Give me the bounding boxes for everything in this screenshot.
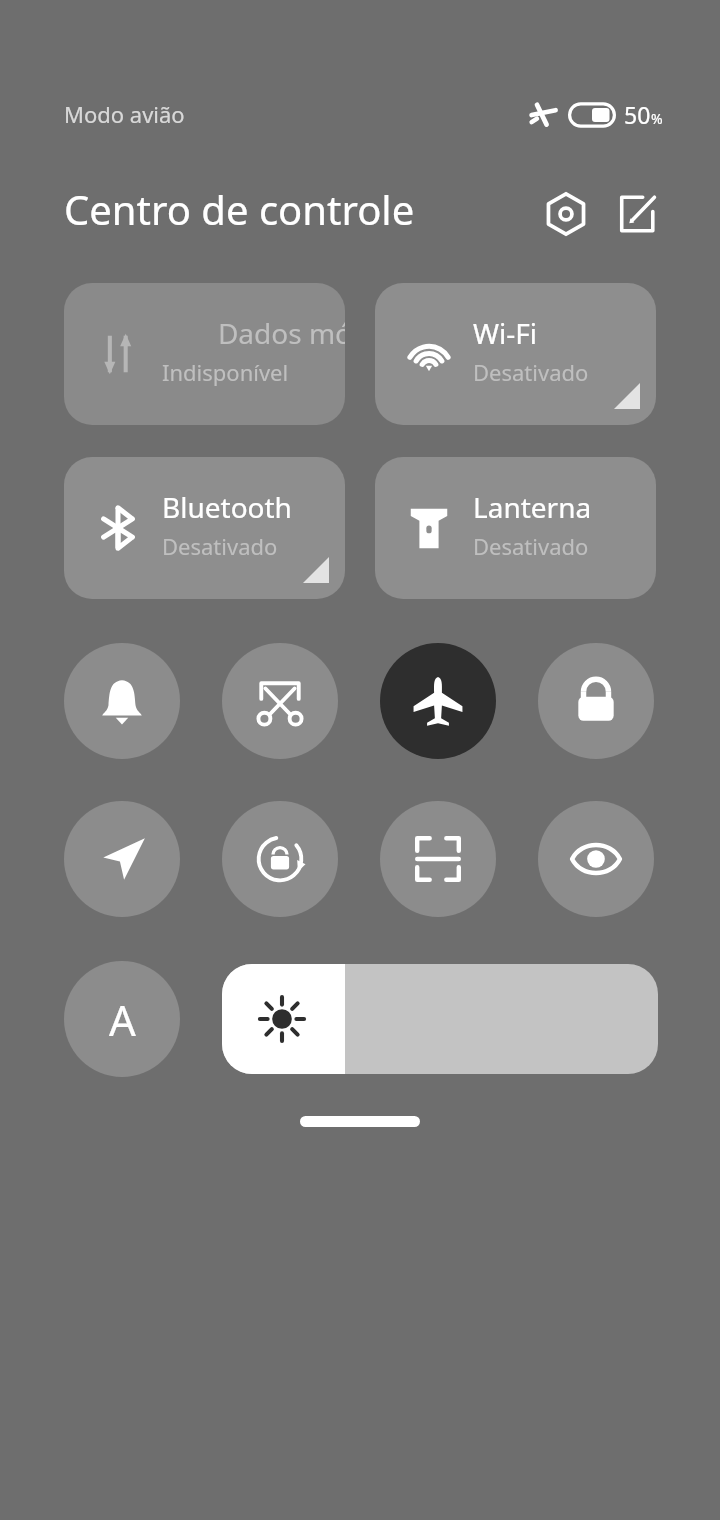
button[interactable]: Escanear: [380, 801, 496, 917]
staticText: Desativado: [473, 357, 589, 387]
button[interactable]: Leitura: [538, 801, 654, 917]
staticText: Indisponível: [162, 357, 289, 387]
button[interactable]: Brilho automático: [64, 961, 180, 1077]
button[interactable]: Localização: [64, 801, 180, 917]
button[interactable]: Bluetooth: [64, 457, 345, 599]
button[interactable]: Dados mó: [64, 283, 345, 425]
button[interactable]: Captura de tela: [222, 643, 338, 759]
button[interactable]: Lanterna: [375, 457, 656, 599]
button[interactable]: Modo avião: [380, 643, 496, 759]
staticText: Dados mó: [162, 314, 345, 352]
staticText: %: [651, 109, 663, 128]
staticText: Modo avião: [64, 99, 185, 129]
staticText: 50: [624, 99, 651, 130]
staticText: Desativado: [162, 531, 278, 561]
staticText: A: [109, 991, 136, 1048]
staticText: Desativado: [473, 531, 589, 561]
button[interactable]: Editar: [608, 186, 664, 242]
staticText: Lanterna: [473, 488, 592, 526]
button[interactable]: Bloquear: [538, 643, 654, 759]
staticText: Centro de controle: [64, 182, 415, 236]
staticText: Wi-Fi: [473, 314, 538, 352]
button[interactable]: Rotação: [222, 801, 338, 917]
button[interactable]: Brilho: [222, 964, 658, 1074]
staticText: Bluetooth: [162, 488, 292, 526]
button[interactable]: Configurações: [538, 186, 594, 242]
button[interactable]: Notificações: [64, 643, 180, 759]
button[interactable]: Wi-Fi: [375, 283, 656, 425]
